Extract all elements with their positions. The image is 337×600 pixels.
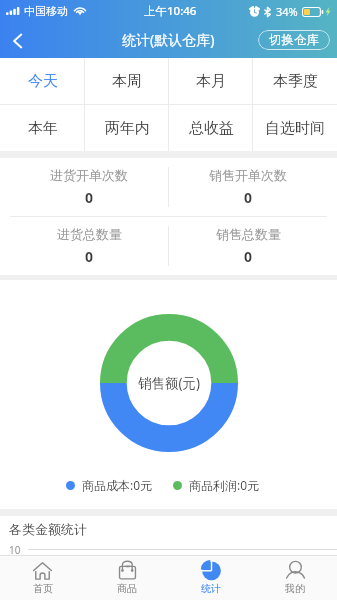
button[interactable]: 今天 — [0, 58, 85, 104]
staticText: 首页 — [33, 582, 53, 595]
staticText: 中国移动 — [24, 4, 68, 18]
staticText: 本周 — [112, 72, 142, 91]
button[interactable]: 自选时间 — [253, 105, 337, 151]
staticText: 两年内 — [105, 119, 150, 138]
staticText: 今天 — [28, 72, 58, 91]
button[interactable]: 进货开单次数 — [10, 158, 168, 216]
button[interactable]: 销售总数量 — [169, 217, 327, 275]
staticText: 销售开单次数 — [209, 167, 287, 183]
button[interactable]: 统计 — [169, 556, 253, 600]
staticText: 0 — [244, 188, 253, 207]
button[interactable]: 总收益 — [169, 105, 253, 151]
button[interactable]: 商品 — [85, 556, 169, 600]
staticText: 商品 — [117, 582, 137, 595]
staticText: 切换仓库 — [269, 32, 319, 48]
staticText: 0 — [244, 247, 253, 266]
button[interactable]: 本月 — [169, 58, 253, 104]
button[interactable]: 本季度 — [253, 58, 337, 104]
staticText: 10 — [9, 543, 21, 555]
button[interactable]: 销售开单次数 — [169, 158, 327, 216]
staticText: 我的 — [285, 582, 305, 595]
staticText: 销售额(元) — [138, 374, 201, 392]
staticText: 统计(默认仓库) — [122, 30, 215, 49]
staticText: 进货总数量 — [57, 226, 122, 242]
button[interactable]: 我的 — [253, 556, 337, 600]
staticText: 各类金额统计 — [9, 521, 87, 537]
staticText: 商品利润:0元 — [189, 477, 260, 493]
staticText: 0 — [85, 188, 94, 207]
button[interactable]: 切换仓库 — [258, 30, 330, 50]
staticText: 本季度 — [273, 72, 318, 91]
staticText: 总收益 — [189, 119, 234, 138]
button[interactable]: 两年内 — [85, 105, 169, 151]
staticText: 统计 — [201, 582, 221, 595]
staticText: 商品成本:0元 — [82, 477, 153, 493]
button[interactable]: 本周 — [85, 58, 169, 104]
button[interactable]: 本年 — [0, 105, 85, 151]
staticText: 上午10:46 — [144, 3, 197, 19]
button[interactable]: Back — [0, 23, 35, 58]
button[interactable]: 首页 — [0, 556, 85, 600]
button[interactable]: 进货总数量 — [10, 217, 168, 275]
staticText: 进货开单次数 — [50, 167, 128, 183]
staticText: 0 — [85, 247, 94, 266]
staticText: 自选时间 — [265, 119, 325, 138]
staticText: 本月 — [196, 72, 226, 91]
staticText: 销售总数量 — [216, 226, 281, 242]
staticText: 34% — [276, 4, 298, 19]
staticText: 本年 — [28, 119, 58, 138]
